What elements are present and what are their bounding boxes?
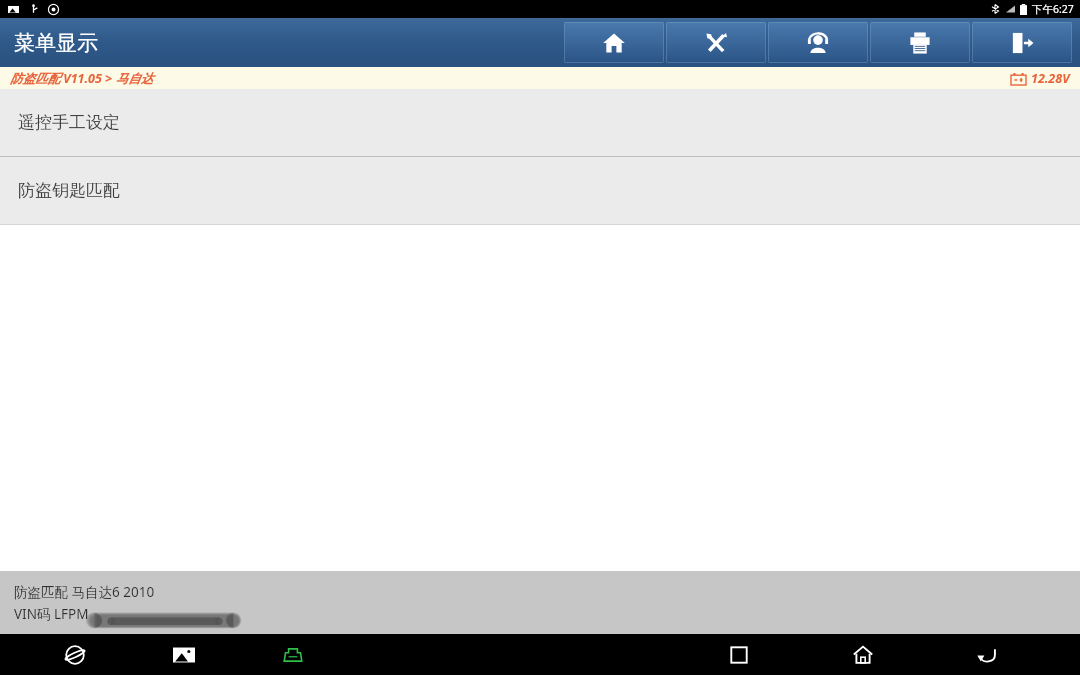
staticText: 防盗匹配 马自达6 2010 <box>14 583 155 601</box>
staticText: VIN码 LFPM <box>14 605 89 623</box>
button[interactable]: Exit <box>972 22 1072 63</box>
button[interactable]: Home <box>564 22 664 63</box>
button[interactable]: Back <box>964 634 1010 675</box>
button[interactable]: 遥控手工设定 <box>0 89 1080 156</box>
button[interactable]: Support <box>768 22 868 63</box>
button[interactable]: Recent apps <box>716 634 762 675</box>
button[interactable]: Diagnostics <box>666 22 766 63</box>
staticText: 菜单显示 <box>14 30 98 56</box>
button[interactable]: 防盗钥匙匹配 <box>0 157 1080 224</box>
button[interactable]: VCI <box>270 634 316 675</box>
staticText: 遥控手工设定 <box>18 112 120 133</box>
staticText: 防盗匹配 V11.05 > 马自达 <box>10 70 153 87</box>
button[interactable]: Home <box>840 634 886 675</box>
staticText: 下午6:27 <box>1032 2 1074 16</box>
button[interactable]: Browser <box>52 634 98 675</box>
staticText: 防盗钥匙匹配 <box>18 180 120 201</box>
button[interactable]: Gallery <box>161 634 207 675</box>
staticText: 12.28V <box>1031 70 1070 87</box>
button[interactable]: Print <box>870 22 970 63</box>
